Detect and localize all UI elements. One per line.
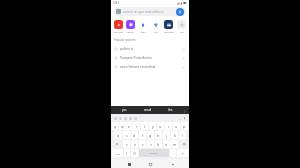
staticText: j — [166, 133, 167, 138]
button[interactable]: email — [136, 106, 159, 114]
staticText: Banking — [164, 30, 174, 33]
staticText: y — [152, 124, 154, 129]
staticText: r — [136, 124, 138, 129]
staticText: f — [142, 133, 144, 138]
staticText: Tempest. Pirate Action — [120, 56, 182, 60]
button[interactable]: Voice input — [182, 116, 187, 121]
button[interactable]: q — [112, 122, 118, 130]
button[interactable]: b — [155, 140, 162, 148]
staticText: Twitch — [126, 30, 134, 33]
button[interactable]: m — [171, 140, 178, 148]
staticText: c — [142, 142, 144, 147]
button[interactable]: i — [165, 122, 172, 130]
button[interactable]: Settings — [177, 116, 182, 121]
staticText: ⋮ — [183, 109, 186, 112]
staticText: the — [168, 108, 173, 112]
staticText: m — [173, 142, 177, 147]
button[interactable]: the — [159, 106, 182, 114]
staticText: n — [165, 142, 168, 147]
button[interactable]: Backspace — [179, 140, 188, 148]
staticText: d — [133, 133, 136, 138]
staticText: . — [173, 151, 174, 156]
staticText: e — [128, 124, 130, 129]
staticText: ?123 — [115, 152, 121, 155]
button[interactable]: Recent apps — [125, 160, 133, 168]
button[interactable]: a — [114, 131, 122, 139]
button[interactable]: Enter — [177, 149, 188, 157]
button[interactable]: More suggestions — [182, 108, 187, 113]
button[interactable]: Keyboard tool 3 — [123, 116, 128, 121]
staticText: a — [117, 133, 119, 138]
button[interactable]: Space — [139, 149, 169, 157]
button[interactable]: sea of thieves on android — [111, 62, 189, 71]
button[interactable]: u — [157, 122, 164, 130]
staticText: ⋯ — [178, 117, 181, 120]
staticText: x — [134, 142, 136, 147]
staticText: l — [182, 133, 183, 138]
button[interactable]: Back — [168, 160, 176, 168]
button[interactable]: o — [173, 122, 180, 130]
button[interactable]: Keyboard tool 2 — [118, 116, 123, 121]
staticText: h — [157, 133, 160, 138]
staticText: search or type web address — [123, 10, 176, 14]
button[interactable]: s — [123, 131, 130, 139]
button[interactable]: k — [171, 131, 178, 139]
button[interactable]: Tempest. Pirate Action — [111, 53, 189, 62]
button[interactable]: Emoji — [131, 149, 138, 157]
staticText: 9:41 — [113, 1, 119, 5]
button[interactable]: f — [139, 131, 146, 139]
staticText: q — [114, 124, 117, 129]
staticText: k — [174, 133, 176, 138]
button[interactable]: n — [163, 140, 170, 148]
button[interactable]: r — [133, 122, 140, 130]
button[interactable]: Keyboard tool 5 — [133, 116, 138, 121]
button[interactable]: ?123 — [112, 149, 123, 157]
button[interactable]: Home — [146, 160, 154, 168]
staticText: English — [150, 152, 158, 155]
staticText: u — [159, 124, 162, 129]
staticText: t — [144, 124, 146, 129]
button[interactable]: / — [124, 149, 130, 157]
button[interactable]: search or type web address — [114, 7, 186, 16]
button[interactable]: Twitch — [124, 18, 136, 35]
staticText: g — [149, 133, 152, 138]
staticText: / — [126, 151, 128, 156]
staticText: b — [157, 142, 160, 147]
button[interactable]: h — [155, 131, 162, 139]
button[interactable]: YouTube — [112, 18, 124, 35]
button[interactable]: Mir — [149, 18, 162, 35]
button[interactable]: j — [163, 131, 170, 139]
staticText: Go — [180, 30, 184, 33]
staticText: Popular queries — [114, 38, 136, 42]
button[interactable]: Banking — [162, 18, 175, 35]
button[interactable]: t — [141, 122, 148, 130]
staticText: yes — [122, 108, 127, 112]
button[interactable]: Go — [175, 18, 188, 35]
staticText: politics tv — [120, 47, 182, 51]
button[interactable]: p — [181, 122, 188, 130]
staticText: Mir — [154, 30, 158, 33]
button[interactable]: y — [149, 122, 156, 130]
staticText: z — [126, 142, 128, 147]
button[interactable]: Keyboard tool 4 — [128, 116, 133, 121]
button[interactable]: d — [131, 131, 138, 139]
button[interactable]: e — [126, 122, 132, 130]
button[interactable]: Keyboard tool 1 — [113, 116, 118, 121]
button[interactable]: w — [119, 122, 125, 130]
button[interactable]: v — [147, 140, 154, 148]
button[interactable]: . — [170, 149, 176, 157]
button[interactable]: Voice search — [176, 8, 184, 16]
staticText: w — [121, 124, 124, 129]
button[interactable]: l — [179, 131, 186, 139]
button[interactable]: g — [147, 131, 154, 139]
button[interactable]: z — [123, 140, 130, 148]
button[interactable]: c — [139, 140, 146, 148]
button[interactable]: yes — [113, 106, 136, 114]
button[interactable]: ozon — [136, 18, 149, 35]
button[interactable]: Shift — [112, 140, 122, 148]
staticText: YouTube — [113, 30, 123, 33]
staticText: p — [183, 124, 186, 129]
button[interactable]: politics tv — [111, 44, 189, 53]
button[interactable]: x — [131, 140, 138, 148]
staticText: sea of thieves on android — [120, 65, 182, 69]
